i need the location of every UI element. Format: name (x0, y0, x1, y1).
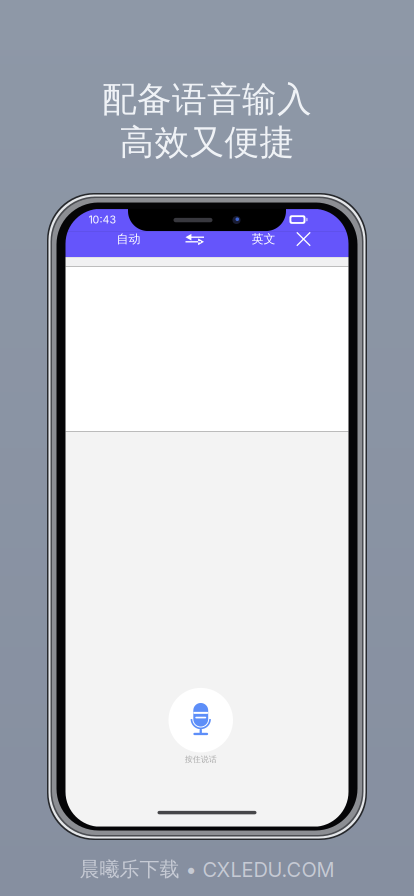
button[interactable]: 英文 (237, 228, 289, 250)
staticText: 自动 (116, 231, 140, 247)
button[interactable]: 按住说话 (155, 684, 247, 768)
button[interactable]: Close (286, 228, 320, 250)
button[interactable]: Swap languages (174, 228, 214, 250)
button[interactable]: 自动 (102, 228, 154, 250)
staticText: 配备语音输入 (102, 78, 312, 121)
staticText: 10:43 (88, 213, 116, 226)
staticText: 晨曦乐下载 • CXLEDU.COM (79, 857, 334, 882)
staticText: 高效又便捷 (119, 121, 294, 164)
staticText: 英文 (251, 231, 275, 247)
staticText: 按住说话 (185, 754, 217, 764)
